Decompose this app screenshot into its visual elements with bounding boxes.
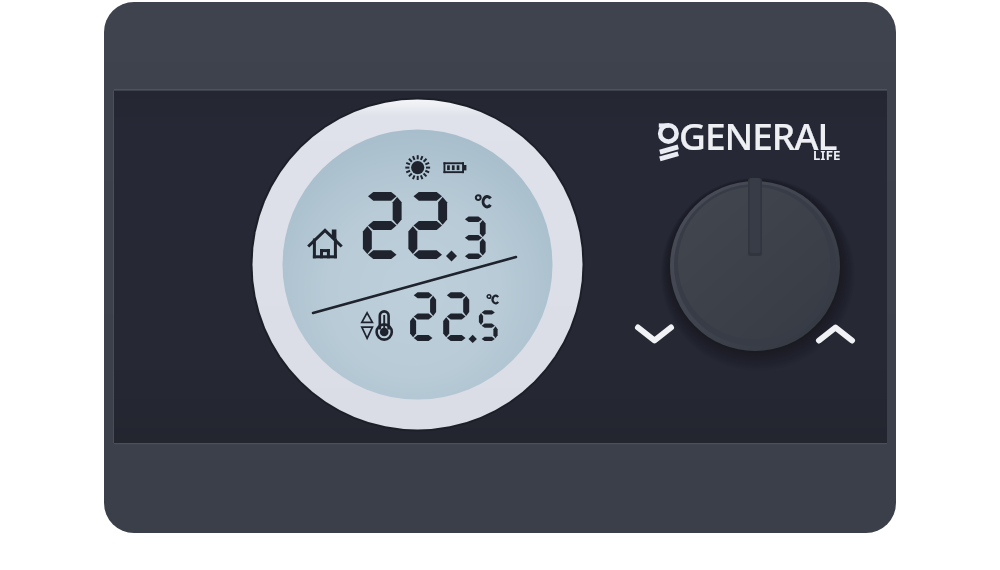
button[interactable]: Decrease temperature bbox=[625, 312, 685, 358]
button[interactable]: Temperature knob bbox=[670, 181, 840, 351]
button[interactable]: Thermostat display, room 22.3 degrees, s… bbox=[252, 99, 584, 431]
button[interactable]: General Life smart thermostat bbox=[0, 0, 1000, 570]
staticText: LIFE bbox=[813, 146, 841, 164]
button[interactable]: Increase temperature bbox=[806, 312, 866, 358]
staticText: GENERAL bbox=[679, 110, 837, 160]
